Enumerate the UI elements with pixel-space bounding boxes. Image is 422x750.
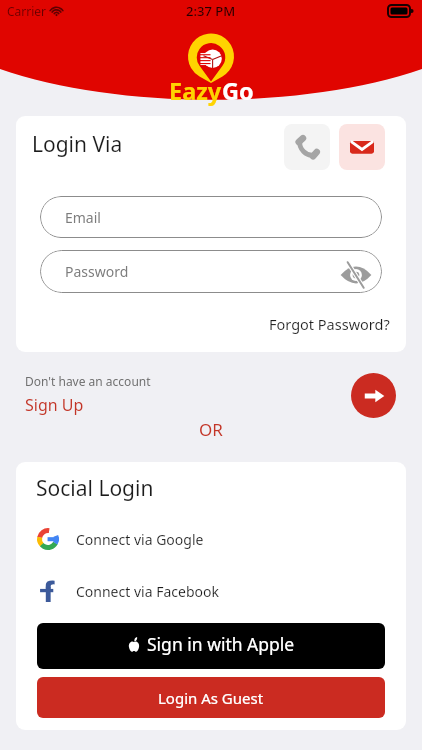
staticText: Sign in with Apple bbox=[147, 632, 295, 656]
staticText: Social Login bbox=[36, 474, 154, 503]
button[interactable]: Show password bbox=[339, 255, 373, 289]
staticText: Don't have an account bbox=[25, 373, 151, 389]
button[interactable]: Sign in with Apple bbox=[37, 623, 385, 669]
button[interactable]: Continue bbox=[351, 373, 396, 418]
button[interactable]: Login via phone bbox=[284, 124, 330, 170]
button[interactable]: Login via email bbox=[339, 124, 385, 170]
staticText: Login As Guest bbox=[158, 688, 264, 708]
staticText: Login Via bbox=[32, 130, 123, 159]
button[interactable]: Connect via Facebook bbox=[21, 570, 351, 612]
staticText: Email bbox=[65, 208, 101, 227]
staticText: Carrier bbox=[7, 3, 47, 19]
staticText: 2:37 PM bbox=[186, 2, 236, 20]
staticText: Connect via Google bbox=[76, 530, 204, 549]
staticText: OR bbox=[199, 418, 223, 441]
staticText: Connect via Facebook bbox=[76, 582, 219, 601]
button[interactable]: Connect via Google bbox=[21, 518, 351, 560]
staticText: Password bbox=[65, 262, 129, 281]
button[interactable]: Email bbox=[40, 196, 382, 238]
button[interactable]: Sign Up bbox=[25, 394, 84, 416]
button[interactable]: Login As Guest bbox=[37, 677, 385, 718]
staticText: Go bbox=[222, 75, 254, 107]
button[interactable]: Forgot Password? bbox=[269, 314, 390, 334]
staticText: Eazy bbox=[169, 75, 222, 107]
button[interactable]: Password bbox=[40, 250, 382, 293]
